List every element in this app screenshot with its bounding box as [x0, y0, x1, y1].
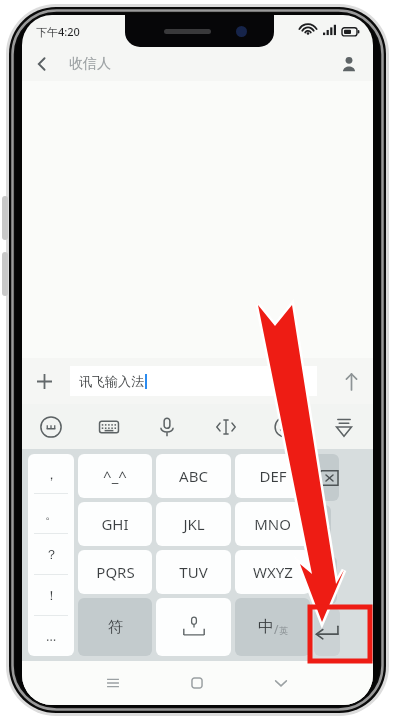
- staticText: /: [274, 621, 279, 637]
- button[interactable]: ，: [28, 454, 74, 493]
- button[interactable]: GHI: [78, 502, 152, 546]
- button[interactable]: Keyboard layout: [80, 404, 138, 449]
- button[interactable]: 123: [314, 556, 337, 604]
- button[interactable]: JKL: [156, 502, 231, 546]
- button[interactable]: Back: [239, 661, 323, 705]
- staticText: DEF: [259, 466, 287, 486]
- button[interactable]: Emoji: [255, 404, 314, 449]
- staticText: TUV: [179, 562, 208, 582]
- button[interactable]: ？: [28, 534, 74, 574]
- staticText: 收信人: [69, 55, 111, 73]
- button[interactable]: ^_^: [78, 454, 152, 498]
- staticText: ，: [45, 466, 58, 482]
- button[interactable]: Space: [156, 598, 231, 656]
- button[interactable]: WXYZ: [235, 550, 310, 594]
- button[interactable]: Enter: [314, 608, 340, 656]
- button[interactable]: 中: [235, 598, 310, 656]
- button[interactable]: DEF: [235, 454, 310, 498]
- button[interactable]: …: [28, 616, 74, 656]
- staticText: ab: [314, 519, 331, 538]
- staticText: PQRS: [96, 562, 135, 582]
- button[interactable]: ！: [28, 575, 74, 615]
- staticText: 下午4:20: [36, 24, 80, 39]
- staticText: ABC: [179, 466, 208, 486]
- button[interactable]: Send: [329, 359, 373, 403]
- staticText: ！: [45, 587, 58, 603]
- button[interactable]: ab: [314, 505, 331, 552]
- staticText: 中: [258, 617, 274, 637]
- button[interactable]: Add: [22, 359, 66, 403]
- button[interactable]: ABC: [156, 454, 231, 498]
- button[interactable]: TUV: [156, 550, 231, 594]
- staticText: GHI: [101, 514, 129, 534]
- staticText: ？: [45, 546, 58, 562]
- button[interactable]: MNO: [235, 502, 310, 546]
- button[interactable]: Contacts: [331, 47, 367, 81]
- button[interactable]: Collapse keyboard: [314, 404, 373, 449]
- staticText: JKL: [183, 514, 205, 534]
- button[interactable]: 。: [28, 494, 74, 533]
- button[interactable]: 讯飞输入法: [70, 366, 317, 396]
- button[interactable]: Home: [155, 661, 239, 705]
- staticText: 123: [314, 571, 337, 589]
- button[interactable]: Back: [22, 47, 62, 81]
- button[interactable]: Backspace: [314, 454, 339, 501]
- button[interactable]: Recents: [71, 661, 155, 705]
- staticText: 。: [45, 506, 58, 522]
- staticText: 英: [279, 625, 288, 636]
- button[interactable]: PQRS: [78, 550, 152, 594]
- staticText: …: [46, 627, 57, 645]
- button[interactable]: Voice input: [138, 404, 196, 449]
- staticText: WXYZ: [253, 562, 293, 582]
- staticText: ^_^: [103, 466, 127, 486]
- button[interactable]: Text cursor: [196, 404, 255, 449]
- staticText: 符: [108, 618, 123, 637]
- staticText: MNO: [254, 514, 291, 534]
- button[interactable]: 符: [78, 598, 152, 656]
- staticText: 讯飞输入法: [79, 373, 144, 389]
- button[interactable]: IME: [22, 404, 80, 449]
